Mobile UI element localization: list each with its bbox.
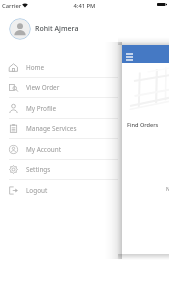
staticText: My Profile xyxy=(26,104,57,113)
button[interactable]: Home xyxy=(0,57,118,78)
button[interactable]: My Account xyxy=(0,139,118,160)
button[interactable]: Logout xyxy=(0,180,118,201)
button[interactable]: Manage Services xyxy=(0,118,118,139)
staticText: My Account xyxy=(26,145,62,154)
staticText: View Order xyxy=(26,83,60,92)
staticText: Home xyxy=(26,63,45,72)
staticText: Rohit Ajmera xyxy=(35,24,79,34)
staticText: Logout xyxy=(26,186,48,195)
staticText: Settings xyxy=(26,165,51,174)
staticText: N xyxy=(166,186,169,193)
staticText: Manage Services xyxy=(26,124,77,133)
button[interactable]: Settings xyxy=(0,159,118,180)
staticText: 4:41 PM xyxy=(0,2,169,10)
button[interactable]: View Order xyxy=(0,77,118,98)
button[interactable]: Open navigation menu xyxy=(122,45,169,63)
staticText: Find Orders xyxy=(127,121,159,129)
staticText: Carrier xyxy=(2,2,22,10)
button[interactable]: My Profile xyxy=(0,98,118,119)
